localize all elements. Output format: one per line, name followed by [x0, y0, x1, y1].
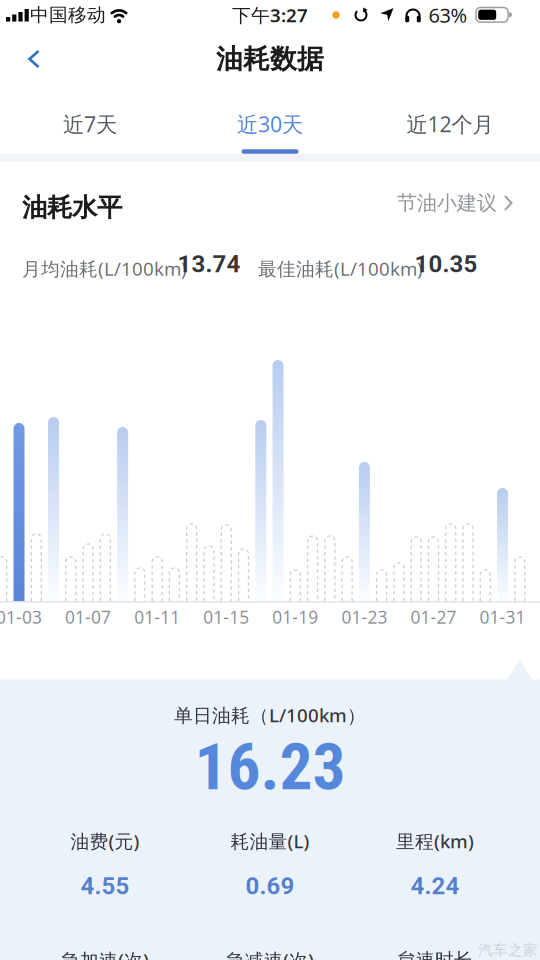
staticText: 单日油耗（L/100km）: [174, 703, 366, 727]
staticText: 13.74: [177, 250, 240, 278]
staticText: 急减速(次): [226, 948, 314, 960]
button[interactable]: 近30天: [195, 102, 345, 146]
staticText: 01-23: [341, 605, 387, 628]
staticText: 01-03: [0, 605, 42, 628]
staticText: 近7天: [63, 110, 117, 138]
staticText: 油费(元): [70, 829, 139, 853]
button[interactable]: 近12个月: [375, 102, 525, 146]
staticText: 0.69: [245, 872, 294, 900]
staticText: 中国移动: [30, 3, 106, 26]
staticText: 里程(km): [396, 829, 474, 853]
staticText: 16.23: [194, 729, 345, 805]
staticText: 01-31: [480, 605, 526, 628]
staticText: 4.55: [80, 872, 129, 900]
staticText: 10.35: [414, 250, 477, 278]
button[interactable]: 近7天: [15, 102, 165, 146]
staticText: 汽车之家: [478, 941, 538, 959]
button[interactable]: 节油小建议: [397, 191, 513, 215]
staticText: 怠速时长: [397, 948, 473, 960]
staticText: 油耗数据: [216, 43, 324, 75]
staticText: 节油小建议: [397, 191, 497, 215]
staticText: 近30天: [237, 110, 303, 138]
staticText: 01-27: [410, 605, 456, 628]
staticText: 01-19: [272, 605, 318, 628]
staticText: 急加速(次): [61, 948, 149, 960]
staticText: 63%: [428, 2, 467, 28]
staticText: 最佳油耗(L/100km): [258, 256, 423, 281]
staticText: 01-11: [134, 605, 180, 628]
staticText: 4.24: [410, 872, 459, 900]
staticText: 下午3:27: [232, 3, 308, 27]
staticText: 油耗水平: [22, 192, 122, 223]
staticText: 月均油耗(L/100km): [22, 256, 187, 281]
staticText: 01-07: [65, 605, 111, 628]
staticText: 耗油量(L): [230, 829, 309, 853]
button[interactable]: Back: [24, 49, 44, 68]
staticText: 01-15: [203, 605, 249, 628]
staticText: 近12个月: [406, 110, 493, 138]
